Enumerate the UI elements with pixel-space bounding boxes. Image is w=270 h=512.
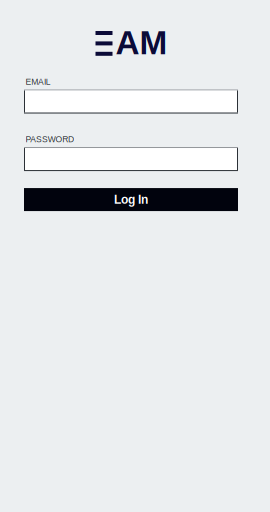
staticText: Log In xyxy=(114,193,148,206)
staticText: PASSWORD xyxy=(25,134,74,144)
button[interactable]: Email xyxy=(24,89,238,113)
button[interactable]: Log In xyxy=(24,188,238,211)
staticText: EMAIL xyxy=(25,77,51,86)
staticText: AM xyxy=(115,24,167,61)
button[interactable]: Password xyxy=(24,147,238,171)
